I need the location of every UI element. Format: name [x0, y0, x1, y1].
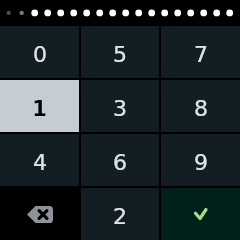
button[interactable]: 2 — [81, 188, 159, 240]
staticText: 7 — [194, 42, 208, 68]
button[interactable]: Confirm — [161, 188, 240, 240]
button[interactable]: 3 — [81, 80, 159, 132]
button[interactable]: 6 — [81, 134, 159, 186]
staticText: 6 — [113, 150, 127, 176]
staticText: 2 — [113, 204, 127, 230]
button[interactable]: 1 — [0, 80, 79, 132]
staticText: 9 — [194, 150, 208, 176]
button[interactable]: 5 — [81, 26, 159, 78]
staticText: 5 — [113, 42, 127, 68]
button[interactable]: 8 — [161, 80, 240, 132]
button[interactable]: 4 — [0, 134, 79, 186]
staticText: 4 — [33, 150, 47, 176]
button[interactable]: 9 — [161, 134, 240, 186]
button[interactable]: Backspace — [0, 188, 79, 240]
staticText: 0 — [33, 42, 47, 68]
staticText: 8 — [194, 96, 208, 122]
staticText: 1 — [32, 97, 47, 121]
button[interactable]: 7 — [161, 26, 240, 78]
staticText: 3 — [113, 96, 127, 122]
button[interactable]: 0 — [0, 26, 79, 78]
